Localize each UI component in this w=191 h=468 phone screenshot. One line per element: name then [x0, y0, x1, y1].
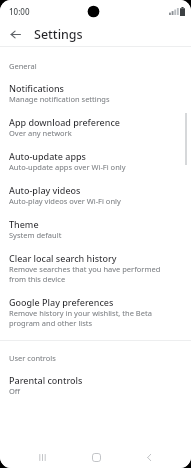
button[interactable]: Recent apps: [31, 446, 53, 468]
button[interactable]: Theme: [0, 206, 191, 240]
staticText: User controls: [9, 353, 56, 363]
button[interactable]: Google Play preferences: [0, 284, 191, 328]
button[interactable]: App download preference: [0, 104, 191, 138]
staticText: System default: [9, 230, 62, 240]
staticText: Remove history in your wishlist, the Bet…: [9, 308, 178, 328]
staticText: Auto-update apps: [9, 150, 86, 162]
staticText: Auto-play videos over Wi-Fi only: [9, 196, 121, 206]
button[interactable]: Home: [85, 446, 107, 468]
button[interactable]: Back: [5, 24, 25, 44]
button[interactable]: Parental controls: [0, 363, 191, 396]
staticText: Manage notification settings: [9, 94, 110, 104]
button[interactable]: Back: [138, 446, 160, 468]
button[interactable]: Auto-play videos: [0, 172, 191, 206]
staticText: Auto-play videos: [9, 184, 81, 196]
staticText: Google Play preferences: [9, 296, 114, 308]
staticText: Parental controls: [9, 374, 83, 386]
staticText: Notifications: [9, 82, 64, 94]
staticText: Off: [9, 386, 21, 396]
staticText: App download preference: [9, 116, 120, 128]
staticText: 10:00: [9, 6, 30, 17]
button[interactable]: Auto-update apps: [0, 138, 191, 172]
staticText: Over any network: [9, 128, 72, 138]
button[interactable]: Clear local search history: [0, 240, 191, 284]
staticText: Remove searches that you have performed …: [9, 264, 178, 284]
staticText: Clear local search history: [9, 252, 117, 264]
staticText: General: [9, 61, 37, 71]
staticText: Settings: [34, 26, 83, 43]
staticText: Theme: [9, 218, 39, 230]
button[interactable]: Notifications: [0, 71, 191, 104]
staticText: Auto-update apps over Wi-Fi only: [9, 162, 126, 172]
